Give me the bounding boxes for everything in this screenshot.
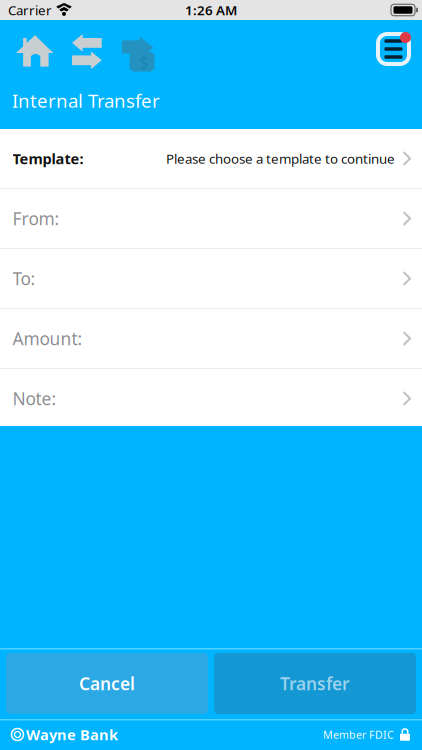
staticText: 1:26 AM — [185, 1, 237, 19]
button[interactable]: To: — [0, 249, 422, 308]
staticText: Note: — [12, 387, 56, 410]
button[interactable]: Menu — [376, 32, 411, 66]
staticText: From: — [12, 207, 59, 230]
staticText: Member FDIC — [323, 727, 394, 742]
staticText: To: — [12, 267, 35, 290]
button[interactable]: Transfer — [214, 653, 416, 714]
button[interactable]: Note: — [0, 369, 422, 428]
staticText: Wayne Bank — [26, 725, 118, 744]
staticText: Template: — [12, 149, 83, 168]
button[interactable]: Cancel — [6, 653, 208, 714]
staticText: Internal Transfer — [12, 88, 160, 113]
button[interactable]: Template: — [0, 129, 422, 188]
button[interactable]: Pay bills — [122, 27, 154, 65]
staticText: $ — [139, 51, 149, 74]
button[interactable]: From: — [0, 189, 422, 248]
button[interactable]: Amount: — [0, 309, 422, 368]
staticText: Amount: — [12, 327, 82, 350]
staticText: Cancel — [79, 672, 135, 695]
staticText: Please choose a template to continue — [166, 150, 395, 167]
staticText: Transfer — [280, 672, 350, 695]
staticText: Carrier — [8, 1, 52, 19]
button[interactable]: Transfers — [72, 34, 102, 70]
button[interactable]: Home — [16, 35, 53, 67]
